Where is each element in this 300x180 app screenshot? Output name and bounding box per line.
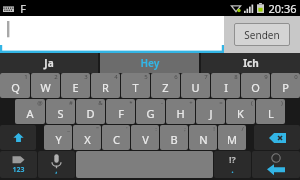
button[interactable]: Ja [0, 53, 98, 73]
staticText: P [282, 80, 289, 95]
staticText: D [86, 106, 95, 121]
staticText: # [69, 99, 73, 107]
staticText: S [57, 106, 64, 121]
staticText: M [227, 132, 237, 147]
button[interactable]: Punctuation [214, 151, 251, 178]
staticText: * [129, 99, 133, 107]
staticText: B [170, 132, 178, 147]
button[interactable]: W [31, 73, 60, 98]
button[interactable]: G [136, 99, 165, 124]
staticText: Y [55, 132, 62, 147]
button[interactable]: Enter [252, 151, 300, 178]
button[interactable]: Ich [201, 53, 300, 73]
button[interactable]: J [196, 99, 225, 124]
staticText: ! [213, 125, 215, 133]
button[interactable] [0, 16, 224, 53]
staticText: Ich [243, 56, 259, 70]
staticText: , [55, 164, 58, 175]
staticText: 7 [204, 73, 208, 81]
staticText: Ja [44, 56, 54, 70]
staticText: T [132, 80, 139, 95]
button[interactable]: P [271, 73, 300, 98]
button[interactable]: X [73, 125, 101, 150]
staticText: O [251, 80, 260, 95]
staticText: Q [11, 80, 20, 95]
staticText: - [161, 99, 163, 107]
staticText: 6 [174, 73, 178, 81]
staticText: & [98, 99, 103, 107]
staticText: : [155, 125, 157, 133]
button[interactable]: A [15, 99, 45, 124]
staticText: 1 [24, 73, 28, 81]
staticText: C [113, 132, 120, 147]
staticText: V [142, 132, 149, 147]
button[interactable]: B [160, 125, 188, 150]
staticText: !? [229, 153, 236, 165]
button[interactable]: E [61, 73, 90, 98]
staticText: G [146, 106, 155, 121]
staticText: ' [126, 125, 128, 133]
button[interactable]: L [256, 99, 285, 124]
staticText: ( [251, 99, 253, 107]
staticText: 8 [234, 73, 238, 81]
staticText: Z [162, 80, 169, 95]
staticText: / [241, 125, 244, 133]
staticText: Hey [140, 56, 160, 70]
button[interactable]: M [218, 125, 246, 150]
staticText: 3 [84, 73, 88, 81]
staticText: @ [37, 99, 43, 107]
staticText: Senden [244, 28, 280, 42]
staticText: + [189, 99, 193, 107]
button[interactable]: Shift [0, 125, 36, 150]
staticText: X [84, 132, 91, 147]
button[interactable]: Hey [100, 53, 199, 73]
button[interactable]: K [226, 99, 255, 124]
staticText: " [96, 125, 99, 133]
staticText: . [231, 163, 234, 175]
button[interactable]: Voice input [38, 151, 75, 178]
staticText: A [26, 106, 34, 121]
button[interactable]: Y [44, 125, 72, 150]
button[interactable]: T [121, 73, 150, 98]
staticText: ; [184, 125, 186, 133]
staticText: R [102, 80, 109, 95]
staticText: 2 [54, 73, 58, 81]
staticText: H [176, 106, 185, 121]
button[interactable]: Backspace [254, 125, 300, 150]
button[interactable]: H [166, 99, 195, 124]
staticText: 20:36 [268, 1, 297, 16]
staticText: I [224, 80, 228, 95]
staticText: 123 [12, 165, 25, 175]
button[interactable]: D [76, 99, 105, 124]
staticText: W [40, 80, 51, 95]
button[interactable]: O [241, 73, 270, 98]
staticText: 5 [144, 73, 148, 81]
staticText: 9 [264, 73, 268, 81]
button[interactable]: R [91, 73, 120, 98]
staticText: K [237, 106, 244, 121]
staticText: N [199, 132, 208, 147]
staticText: 4 [114, 73, 118, 81]
button[interactable]: V [131, 125, 159, 150]
staticText: E [72, 80, 79, 95]
staticText: = [219, 99, 223, 107]
staticText: 0 [294, 73, 298, 81]
button[interactable]: Q [0, 73, 30, 98]
staticText: F [118, 106, 124, 121]
staticText: L [268, 106, 274, 121]
button[interactable]: S [46, 99, 75, 124]
button[interactable]: Z [151, 73, 180, 98]
staticText: J [209, 106, 213, 121]
button[interactable]: I [211, 73, 240, 98]
button[interactable]: Symbols [0, 151, 37, 178]
button[interactable]: C [102, 125, 130, 150]
staticText: U [191, 80, 200, 95]
staticText: F [20, 1, 26, 16]
staticText: ) [281, 99, 283, 107]
staticText: _ [67, 125, 70, 133]
button[interactable]: U [181, 73, 210, 98]
button[interactable]: F [106, 99, 135, 124]
button[interactable]: Senden [234, 23, 290, 46]
button[interactable]: N [189, 125, 217, 150]
